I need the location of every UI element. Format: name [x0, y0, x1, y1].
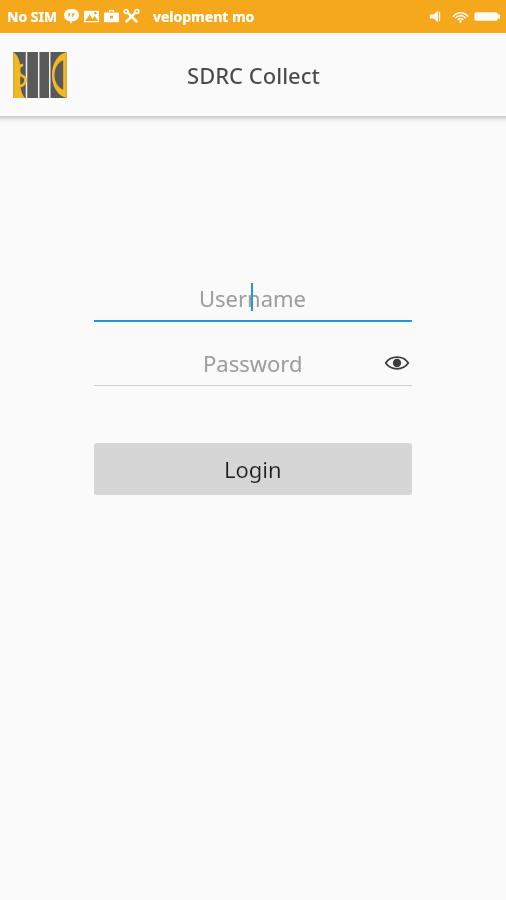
staticText: No SIM — [7, 7, 58, 26]
button[interactable]: Login — [94, 443, 412, 495]
button[interactable]: Username — [94, 276, 412, 322]
staticText: Password — [203, 348, 303, 378]
staticText: Username — [199, 283, 307, 313]
button[interactable]: Password — [94, 341, 412, 386]
button[interactable]: Show password — [382, 348, 412, 378]
staticText: SDRC Collect — [187, 60, 320, 90]
staticText: Login — [224, 454, 282, 484]
staticText: velopment mo — [153, 7, 255, 26]
